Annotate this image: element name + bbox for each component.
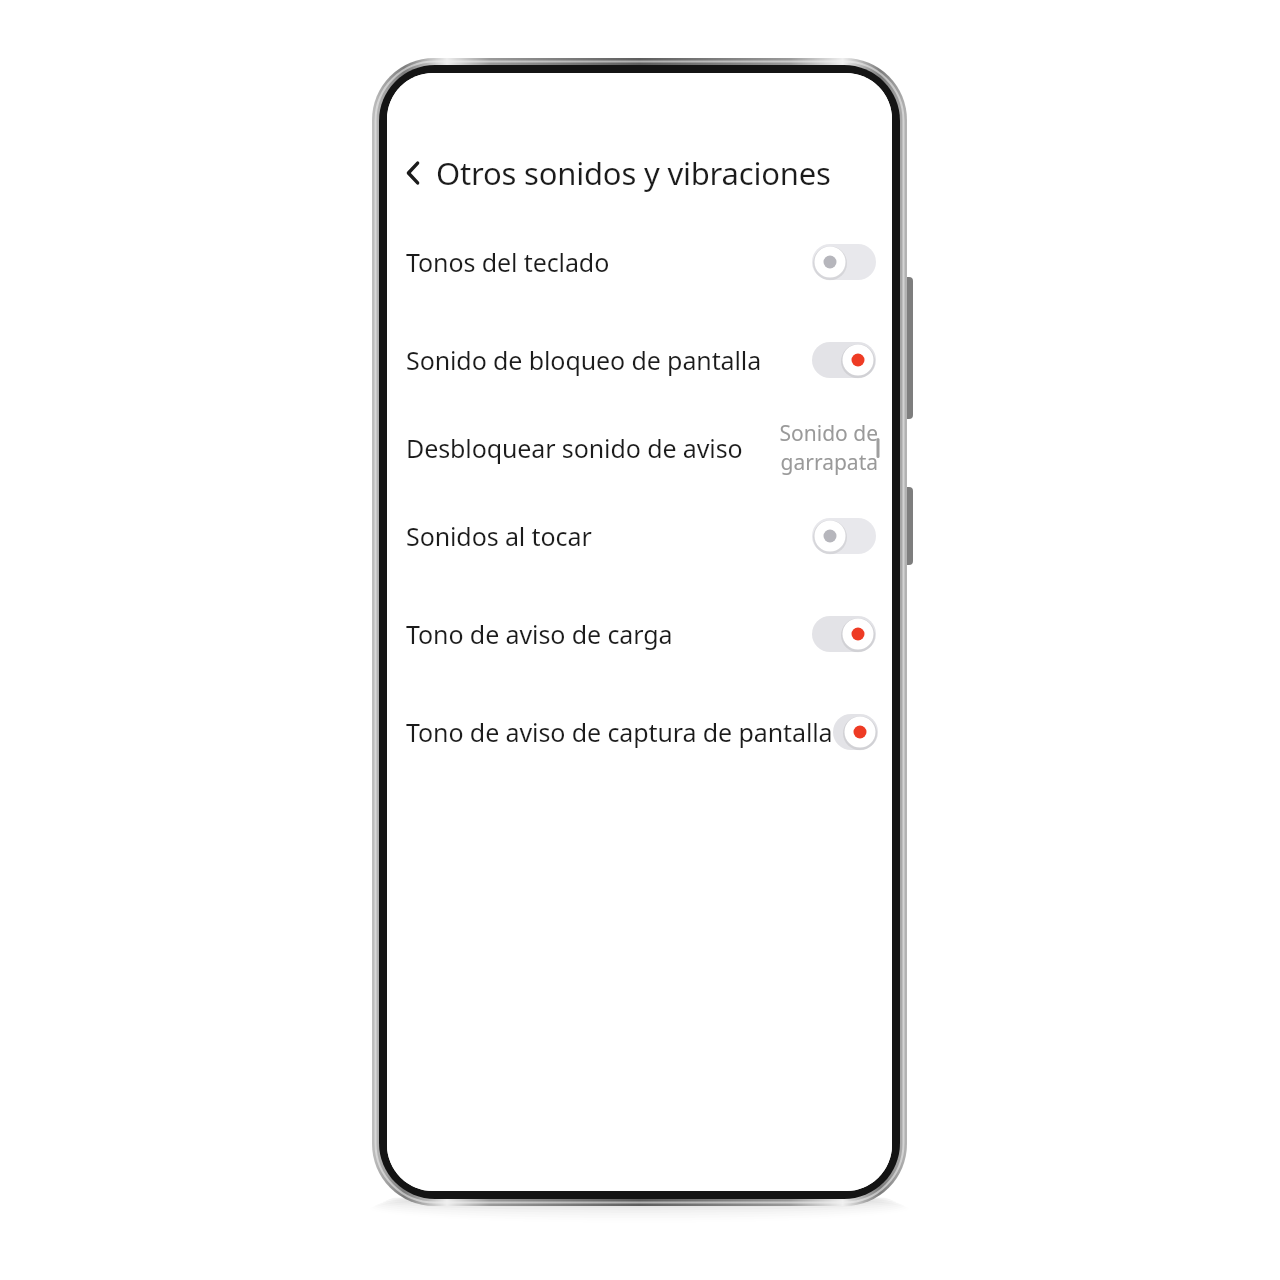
staticText: Sonido de bloqueo de pantalla (406, 343, 762, 377)
staticText: Sonido de garrapata (743, 419, 878, 477)
button[interactable]: Tono de aviso de carga (387, 595, 892, 673)
button[interactable]: Sonido de bloqueo de pantalla (387, 321, 892, 399)
button[interactable]: Desbloquear sonido de aviso (387, 409, 892, 487)
staticText: Tonos del teclado (406, 245, 610, 279)
button[interactable]: Off (812, 518, 876, 554)
button[interactable]: Off (812, 244, 876, 280)
button[interactable]: On (833, 714, 878, 750)
staticText: Sonidos al tocar (406, 519, 592, 553)
staticText: Otros sonidos y vibraciones (436, 152, 831, 194)
button[interactable]: Tonos del teclado (387, 223, 892, 301)
button[interactable]: Tono de aviso de captura de pantalla (387, 693, 892, 771)
button[interactable]: On (812, 616, 876, 652)
button[interactable]: Sonidos al tocar (387, 497, 892, 575)
button[interactable]: On (812, 342, 876, 378)
staticText: Tono de aviso de carga (406, 617, 673, 651)
staticText: Tono de aviso de captura de pantalla (406, 715, 833, 749)
staticText: Desbloquear sonido de aviso (406, 431, 743, 465)
button[interactable]: Back (404, 151, 434, 195)
